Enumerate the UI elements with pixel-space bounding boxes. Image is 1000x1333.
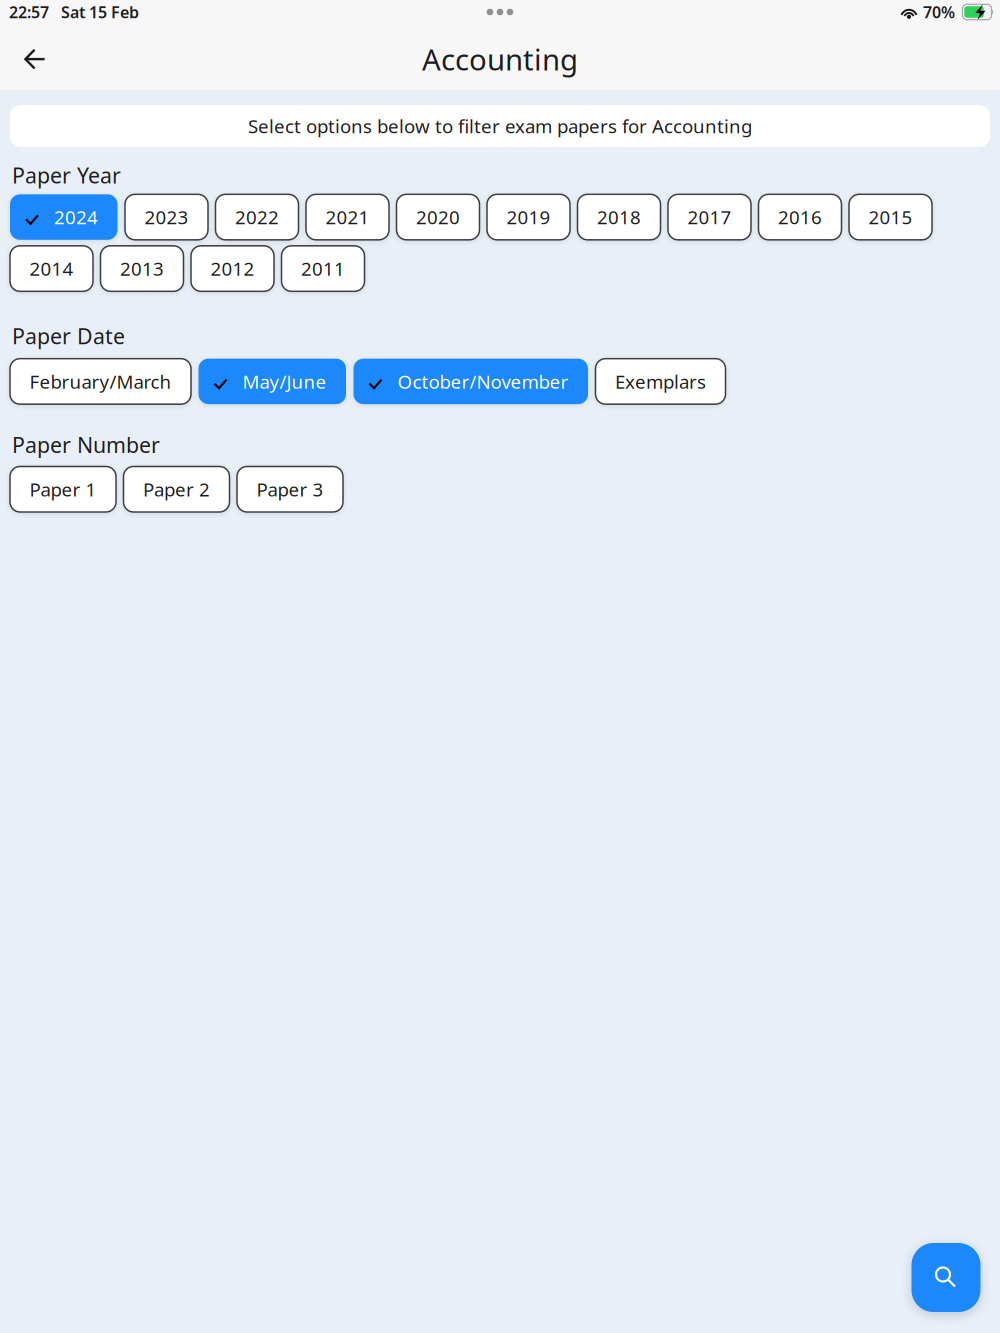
staticText: 2012 bbox=[210, 256, 254, 281]
staticText: 2017 bbox=[687, 205, 731, 229]
staticText: 2011 bbox=[301, 256, 345, 281]
button[interactable]: Paper 3 bbox=[237, 466, 343, 512]
staticText: Paper Year bbox=[12, 161, 121, 189]
staticText: 2024 bbox=[54, 205, 98, 229]
button[interactable]: 2017 bbox=[668, 194, 751, 240]
button[interactable]: 2015 bbox=[849, 194, 932, 240]
button[interactable]: February/March bbox=[10, 359, 191, 404]
button[interactable]: October/November bbox=[353, 359, 588, 404]
staticText: Paper Number bbox=[12, 431, 160, 459]
staticText: February/March bbox=[29, 369, 171, 394]
button[interactable]: 2021 bbox=[306, 194, 389, 240]
button[interactable]: 2019 bbox=[487, 194, 570, 240]
button[interactable]: 2023 bbox=[125, 194, 208, 240]
staticText: Select options below to filter exam pape… bbox=[248, 114, 752, 138]
staticText: Paper 1 bbox=[29, 477, 96, 502]
staticText: 2018 bbox=[597, 205, 641, 229]
staticText: 2023 bbox=[144, 205, 188, 229]
button[interactable]: 2014 bbox=[10, 246, 93, 291]
staticText: 2015 bbox=[868, 205, 912, 229]
staticText: 70% bbox=[923, 1, 955, 23]
button[interactable]: 2013 bbox=[100, 246, 183, 291]
button[interactable]: Back bbox=[11, 36, 57, 82]
staticText: October/November bbox=[397, 369, 568, 394]
staticText: Paper 2 bbox=[143, 477, 210, 502]
staticText: Paper Date bbox=[12, 322, 125, 350]
button[interactable]: Paper 1 bbox=[10, 466, 116, 512]
staticText: May/June bbox=[242, 369, 326, 394]
staticText: Paper 3 bbox=[256, 477, 323, 502]
button[interactable]: 2016 bbox=[758, 194, 841, 240]
staticText: Accounting bbox=[422, 39, 578, 78]
staticText: 22:57 bbox=[9, 1, 49, 23]
button[interactable]: Exemplars bbox=[595, 359, 725, 404]
button[interactable]: 2018 bbox=[577, 194, 660, 240]
button[interactable]: Search bbox=[911, 1243, 980, 1312]
button[interactable]: May/June bbox=[198, 359, 346, 404]
staticText: 2021 bbox=[325, 205, 369, 229]
staticText: Exemplars bbox=[615, 369, 706, 394]
button[interactable]: 2011 bbox=[281, 246, 364, 291]
staticText: 2016 bbox=[778, 205, 822, 229]
button[interactable]: 2022 bbox=[215, 194, 298, 240]
staticText: Sat 15 Feb bbox=[49, 1, 139, 23]
button[interactable]: 2012 bbox=[191, 246, 274, 291]
button[interactable]: Paper 2 bbox=[123, 466, 229, 512]
button[interactable]: 2024 bbox=[10, 194, 117, 240]
button[interactable]: 2020 bbox=[396, 194, 479, 240]
staticText: 2020 bbox=[416, 205, 460, 229]
staticText: 2019 bbox=[506, 205, 550, 229]
staticText: 2014 bbox=[29, 256, 73, 281]
staticText: 2022 bbox=[235, 205, 279, 229]
staticText: 2013 bbox=[120, 256, 164, 281]
